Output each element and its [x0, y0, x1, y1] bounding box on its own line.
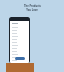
button[interactable] [15, 57, 25, 60]
staticText: You Love [26, 8, 38, 12]
staticText: The Products [24, 4, 41, 8]
